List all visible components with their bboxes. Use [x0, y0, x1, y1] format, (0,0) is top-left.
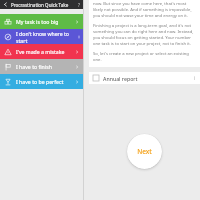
- button[interactable]: I've made a mistake: [0, 44, 83, 59]
- button[interactable]: I have to finish: [0, 59, 83, 74]
- staticText: My task is too big: [16, 18, 59, 25]
- staticText: I've made a mistake: [16, 48, 65, 55]
- staticText: i: [194, 75, 196, 81]
- staticText: Annual report: [103, 75, 138, 82]
- button[interactable]: Next: [127, 134, 162, 169]
- button[interactable]: My task is too big: [0, 14, 83, 29]
- staticText: I have to finish: [16, 63, 52, 70]
- button[interactable]: I have to be perfect: [0, 74, 83, 89]
- staticText: Finishing a project is a long-term goal,…: [93, 23, 196, 47]
- staticText: So, let's create a new project or select…: [93, 51, 196, 63]
- staticText: ?: [78, 2, 80, 8]
- staticText: Procrastination Quick Take: [11, 2, 69, 8]
- other: Back: [3, 2, 8, 7]
- staticText: I have to be perfect: [16, 78, 64, 85]
- button[interactable]: Annual report: [89, 72, 200, 84]
- button[interactable]: Back: [0, 0, 83, 9]
- staticText: Next: [137, 147, 152, 156]
- staticText: now. But since you have come here, that'…: [93, 1, 196, 19]
- staticText: I don't know where to start: [16, 30, 79, 44]
- button[interactable]: I don't know where to start: [0, 29, 83, 44]
